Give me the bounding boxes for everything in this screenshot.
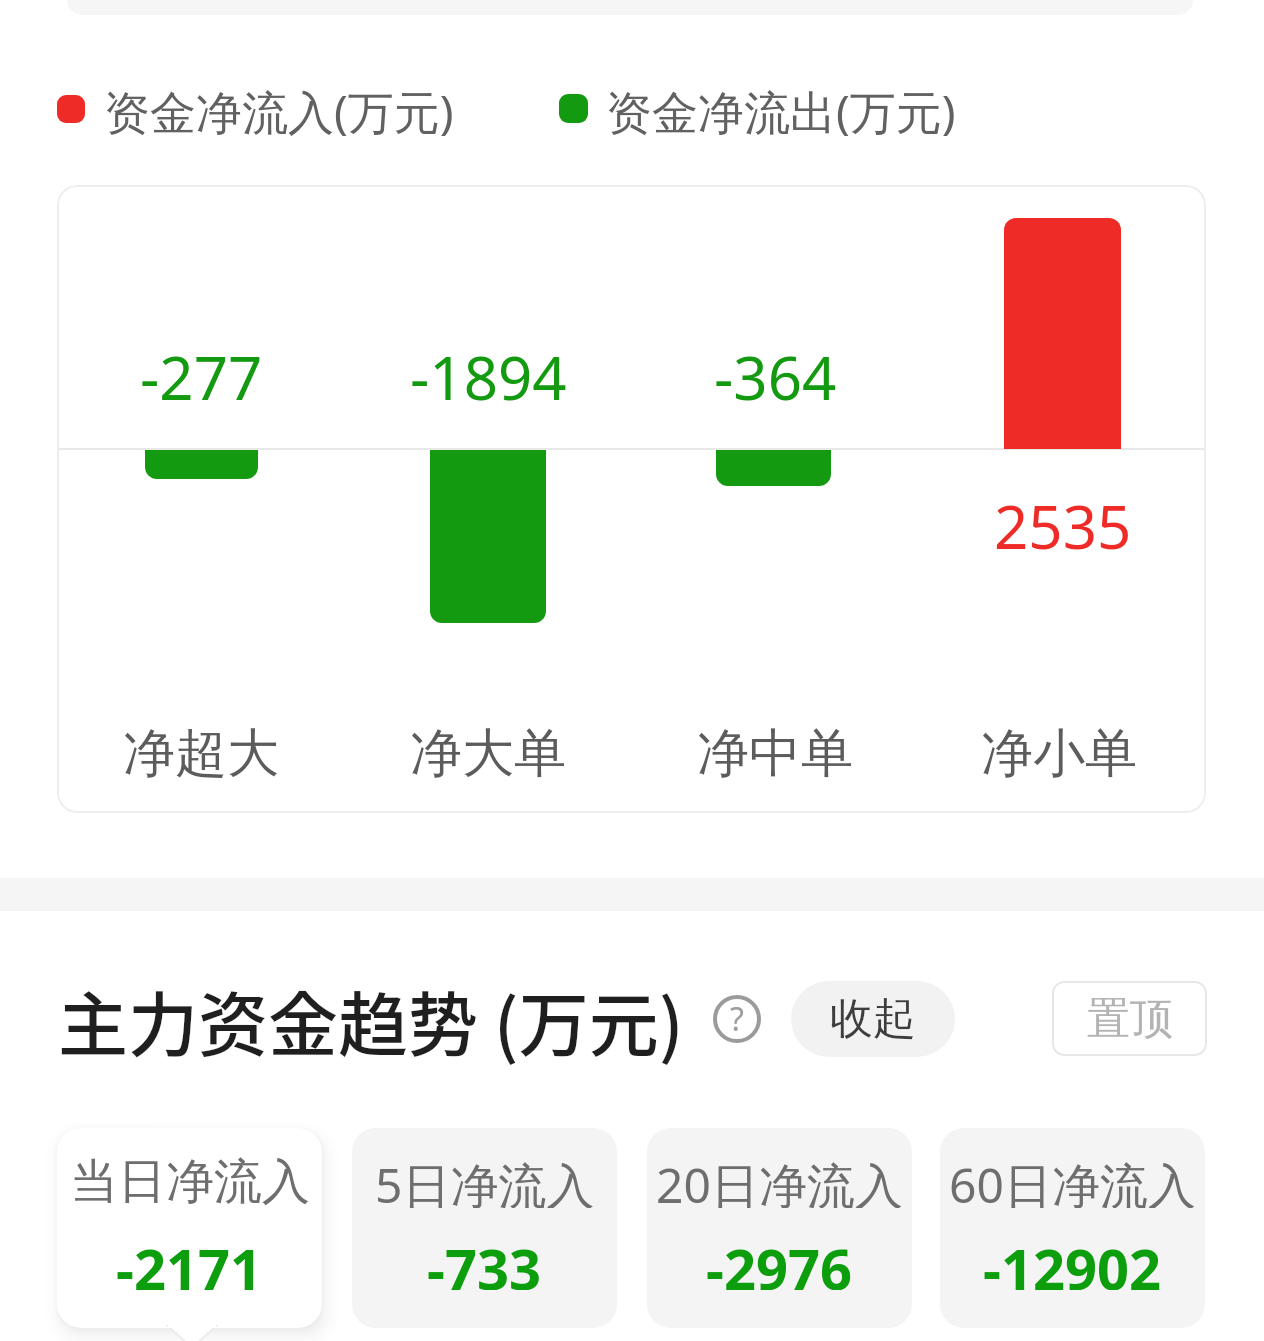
staticText: 当日净流入 bbox=[70, 1152, 310, 1208]
staticText: 净中单 bbox=[697, 721, 853, 787]
staticText: 净大单 bbox=[410, 721, 566, 787]
button[interactable]: 20日净流入 bbox=[647, 1128, 912, 1328]
button[interactable]: ? bbox=[713, 995, 761, 1043]
button[interactable]: 收起 bbox=[791, 981, 955, 1057]
staticText: -1894 bbox=[410, 336, 567, 416]
button[interactable]: 60日净流入 bbox=[940, 1128, 1205, 1328]
staticText: ? bbox=[730, 997, 744, 1041]
staticText: 主力资金趋势 (万元) bbox=[58, 970, 684, 1065]
staticText: 置顶 bbox=[1087, 992, 1173, 1046]
button[interactable]: 当日净流入 bbox=[57, 1128, 322, 1328]
staticText: 2535 bbox=[994, 485, 1132, 565]
staticText: -364 bbox=[714, 336, 837, 416]
staticText: 5日净流入 bbox=[375, 1152, 595, 1208]
staticText: 净小单 bbox=[981, 721, 1137, 787]
staticText: 资金净流入(万元) bbox=[104, 80, 454, 138]
staticText: 20日净流入 bbox=[656, 1152, 903, 1208]
staticText: 净超大 bbox=[123, 721, 279, 787]
staticText: -12902 bbox=[983, 1230, 1162, 1290]
staticText: -2976 bbox=[706, 1230, 853, 1290]
button[interactable]: 置顶 bbox=[1052, 981, 1207, 1056]
staticText: 收起 bbox=[830, 992, 916, 1046]
staticText: -277 bbox=[140, 336, 263, 416]
staticText: -2171 bbox=[116, 1230, 263, 1290]
staticText: 资金净流出(万元) bbox=[606, 80, 956, 138]
staticText: 60日净流入 bbox=[949, 1152, 1196, 1208]
button[interactable]: 5日净流入 bbox=[352, 1128, 617, 1328]
staticText: -733 bbox=[427, 1230, 542, 1290]
